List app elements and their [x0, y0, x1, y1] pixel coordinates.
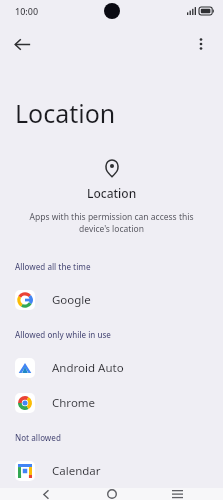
staticText: Location: [87, 185, 137, 201]
button[interactable]: Recent apps: [157, 488, 197, 500]
staticText: Location: [15, 96, 116, 130]
button[interactable]: Chrome: [0, 385, 223, 420]
button[interactable]: Back: [6, 28, 38, 60]
staticText: Calendar: [52, 463, 101, 479]
staticText: Android Auto: [52, 360, 124, 376]
staticText: Chrome: [52, 395, 96, 411]
staticText: Allowed only while in use: [15, 329, 111, 340]
button[interactable]: Android Auto: [0, 350, 223, 385]
button[interactable]: Calendar: [0, 453, 223, 488]
staticText: Not allowed: [15, 432, 61, 443]
button[interactable]: More options: [185, 28, 217, 60]
button[interactable]: Back: [26, 488, 66, 500]
staticText: 10:00: [15, 5, 39, 17]
staticText: Allowed all the time: [15, 261, 91, 272]
button[interactable]: Home: [92, 488, 132, 500]
button[interactable]: Google: [0, 282, 223, 317]
staticText: Apps with this permission can access thi…: [28, 211, 195, 235]
staticText: Google: [52, 292, 91, 308]
